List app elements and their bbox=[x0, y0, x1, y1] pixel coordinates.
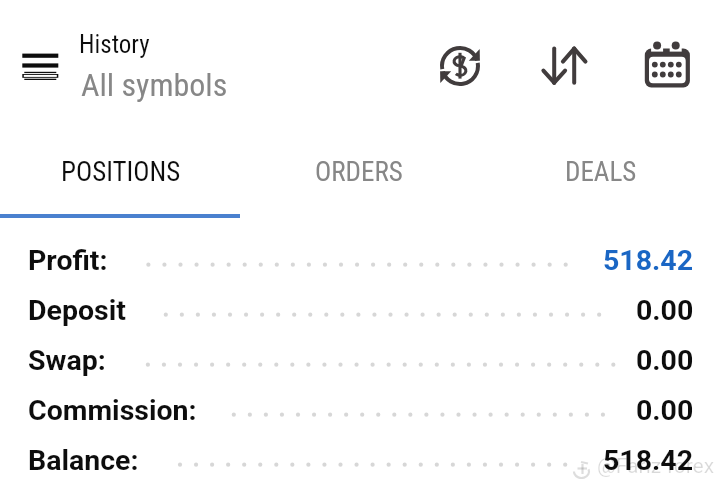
button[interactable]: Select date range bbox=[631, 30, 703, 102]
staticText: 0.00 bbox=[636, 394, 694, 427]
staticText: DEALS bbox=[565, 156, 637, 188]
staticText: Commission: bbox=[28, 394, 197, 427]
button[interactable]: Commission: bbox=[0, 386, 720, 436]
button[interactable]: Sort bbox=[528, 30, 600, 102]
staticText: 518.42 bbox=[603, 444, 694, 477]
staticText: Balance: bbox=[28, 444, 139, 477]
button[interactable]: Deposit bbox=[0, 286, 720, 336]
staticText: History bbox=[79, 30, 150, 59]
staticText: 0.00 bbox=[636, 294, 694, 327]
staticText: 518.42 bbox=[603, 244, 694, 277]
button[interactable]: DEALS bbox=[480, 134, 720, 212]
button[interactable]: POSITIONS bbox=[0, 134, 240, 212]
staticText: POSITIONS bbox=[61, 156, 181, 188]
staticText: Swap: bbox=[28, 344, 106, 377]
staticText: Deposit bbox=[28, 294, 126, 327]
button[interactable]: Profit: bbox=[0, 236, 720, 286]
staticText: @Fariz forex bbox=[597, 454, 715, 479]
staticText: All symbols bbox=[81, 66, 228, 104]
button[interactable]: Open navigation menu bbox=[2, 34, 78, 98]
button[interactable]: ORDERS bbox=[240, 134, 480, 212]
button[interactable]: Swap: bbox=[0, 336, 720, 386]
button[interactable]: Currency exchange bbox=[424, 30, 496, 102]
staticText: 0.00 bbox=[636, 344, 694, 377]
staticText: Profit: bbox=[28, 244, 108, 277]
button[interactable]: Balance: bbox=[0, 436, 720, 486]
staticText: ORDERS bbox=[315, 156, 403, 188]
